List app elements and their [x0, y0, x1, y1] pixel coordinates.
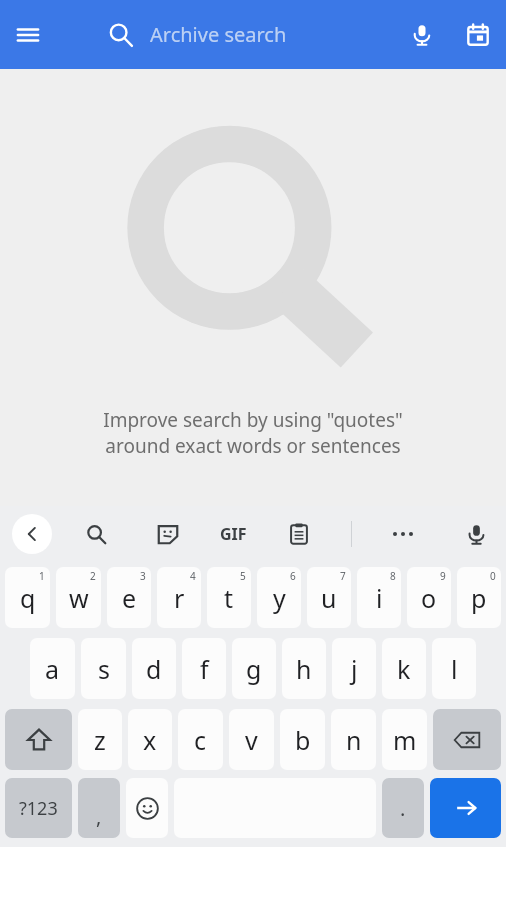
button[interactable]: k [382, 638, 426, 699]
staticText: 6 [290, 569, 296, 583]
button[interactable]: Calendar [450, 7, 506, 63]
staticText: r [174, 581, 185, 615]
button[interactable]: p [457, 567, 501, 628]
staticText: y [273, 581, 286, 615]
button[interactable]: z [78, 709, 122, 770]
button[interactable]: i [357, 567, 401, 628]
button[interactable]: Voice search [394, 7, 450, 63]
staticText: 5 [240, 569, 246, 583]
button[interactable]: Enter [430, 778, 501, 838]
staticText: v [245, 723, 258, 757]
button[interactable]: b [280, 709, 325, 770]
staticText: x [143, 723, 157, 757]
button[interactable]: Clipboard [281, 516, 317, 552]
staticText: Improve search by using "quotes" around … [103, 407, 403, 459]
staticText: i [376, 581, 383, 615]
staticText: j [351, 652, 358, 686]
button[interactable]: g [232, 638, 276, 699]
staticText: , [96, 803, 102, 830]
button[interactable]: s [81, 638, 126, 699]
button[interactable]: Backspace [433, 709, 501, 770]
staticText: . [400, 795, 406, 822]
staticText: GIF [220, 523, 247, 545]
button[interactable]: Stickers [150, 516, 186, 552]
staticText: h [296, 652, 312, 686]
staticText: 0 [490, 569, 496, 583]
button[interactable]: h [282, 638, 326, 699]
staticText: k [397, 652, 411, 686]
staticText: n [346, 723, 362, 757]
button[interactable]: GIF [220, 516, 247, 552]
button[interactable]: m [382, 709, 427, 770]
button[interactable]: a [30, 638, 75, 699]
staticText: l [451, 652, 458, 686]
staticText: 7 [340, 569, 346, 583]
button[interactable]: e [107, 567, 151, 628]
button[interactable]: Archive search [150, 21, 394, 48]
button[interactable]: f [182, 638, 226, 699]
button[interactable]: Search [78, 516, 114, 552]
button[interactable]: u [307, 567, 351, 628]
button[interactable]: q [5, 567, 50, 628]
staticText: a [45, 652, 60, 686]
staticText: 3 [140, 569, 146, 583]
button[interactable]: Menu [0, 7, 56, 63]
staticText: 2 [90, 569, 96, 583]
button[interactable]: r [157, 567, 201, 628]
button[interactable]: Shift [5, 709, 72, 770]
button[interactable]: , [78, 778, 120, 838]
staticText: t [224, 581, 234, 615]
staticText: z [94, 723, 106, 757]
staticText: ?123 [19, 796, 58, 821]
staticText: 1 [39, 569, 45, 583]
button[interactable]: x [128, 709, 172, 770]
button[interactable]: Emoji [126, 778, 168, 838]
button[interactable]: o [407, 567, 451, 628]
staticText: d [146, 652, 162, 686]
staticText: u [321, 581, 337, 615]
button[interactable]: v [229, 709, 274, 770]
button[interactable]: j [332, 638, 376, 699]
staticText: c [194, 723, 207, 757]
button[interactable]: c [178, 709, 223, 770]
staticText: 4 [190, 569, 196, 583]
staticText: b [295, 723, 311, 757]
button[interactable]: . [382, 778, 424, 838]
staticText: m [393, 723, 417, 757]
staticText: f [200, 652, 209, 686]
button[interactable]: Voice input [454, 512, 498, 556]
button[interactable]: l [432, 638, 476, 699]
staticText: e [122, 581, 137, 615]
button[interactable]: d [132, 638, 176, 699]
staticText: 8 [390, 569, 396, 583]
button[interactable]: ?123 [5, 778, 72, 838]
button[interactable]: n [331, 709, 376, 770]
staticText: g [246, 652, 262, 686]
button[interactable]: Back [12, 514, 52, 554]
staticText: 9 [440, 569, 446, 583]
staticText: o [421, 581, 437, 615]
button[interactable]: More options [385, 516, 421, 552]
staticText: w [69, 581, 89, 615]
button[interactable]: t [207, 567, 251, 628]
staticText: p [471, 581, 487, 615]
button[interactable]: y [257, 567, 301, 628]
button[interactable]: w [56, 567, 101, 628]
staticText: q [20, 581, 36, 615]
staticText: s [98, 652, 110, 686]
